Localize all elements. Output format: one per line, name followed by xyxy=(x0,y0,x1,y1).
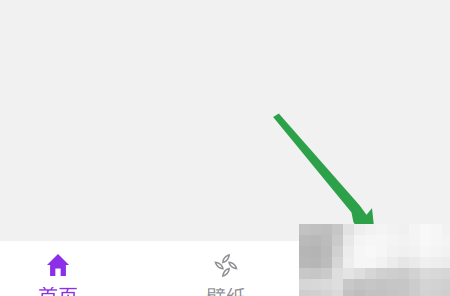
staticText: 壁纸 xyxy=(206,282,246,296)
staticText: 首页 xyxy=(38,281,78,296)
button[interactable]: 壁纸 xyxy=(160,241,292,296)
button[interactable]: 首页 xyxy=(0,241,124,296)
